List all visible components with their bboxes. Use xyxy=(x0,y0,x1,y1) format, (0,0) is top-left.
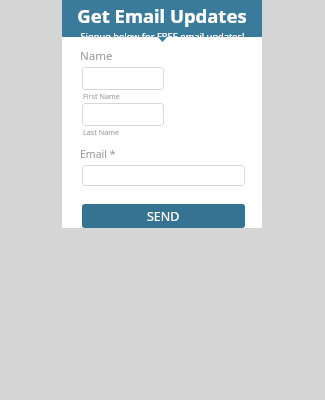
staticText: Last Name xyxy=(83,127,119,137)
staticText: Email * xyxy=(80,147,116,161)
staticText: First Name xyxy=(83,91,120,101)
staticText: Name xyxy=(80,48,113,64)
button[interactable] xyxy=(82,103,164,126)
button[interactable] xyxy=(82,67,164,90)
button[interactable]: SEND xyxy=(82,204,245,228)
staticText: Signup below for FREE email updates! xyxy=(80,30,245,37)
button[interactable] xyxy=(82,165,245,186)
staticText: Get Email Updates xyxy=(77,3,247,28)
staticText: SEND xyxy=(147,208,180,225)
